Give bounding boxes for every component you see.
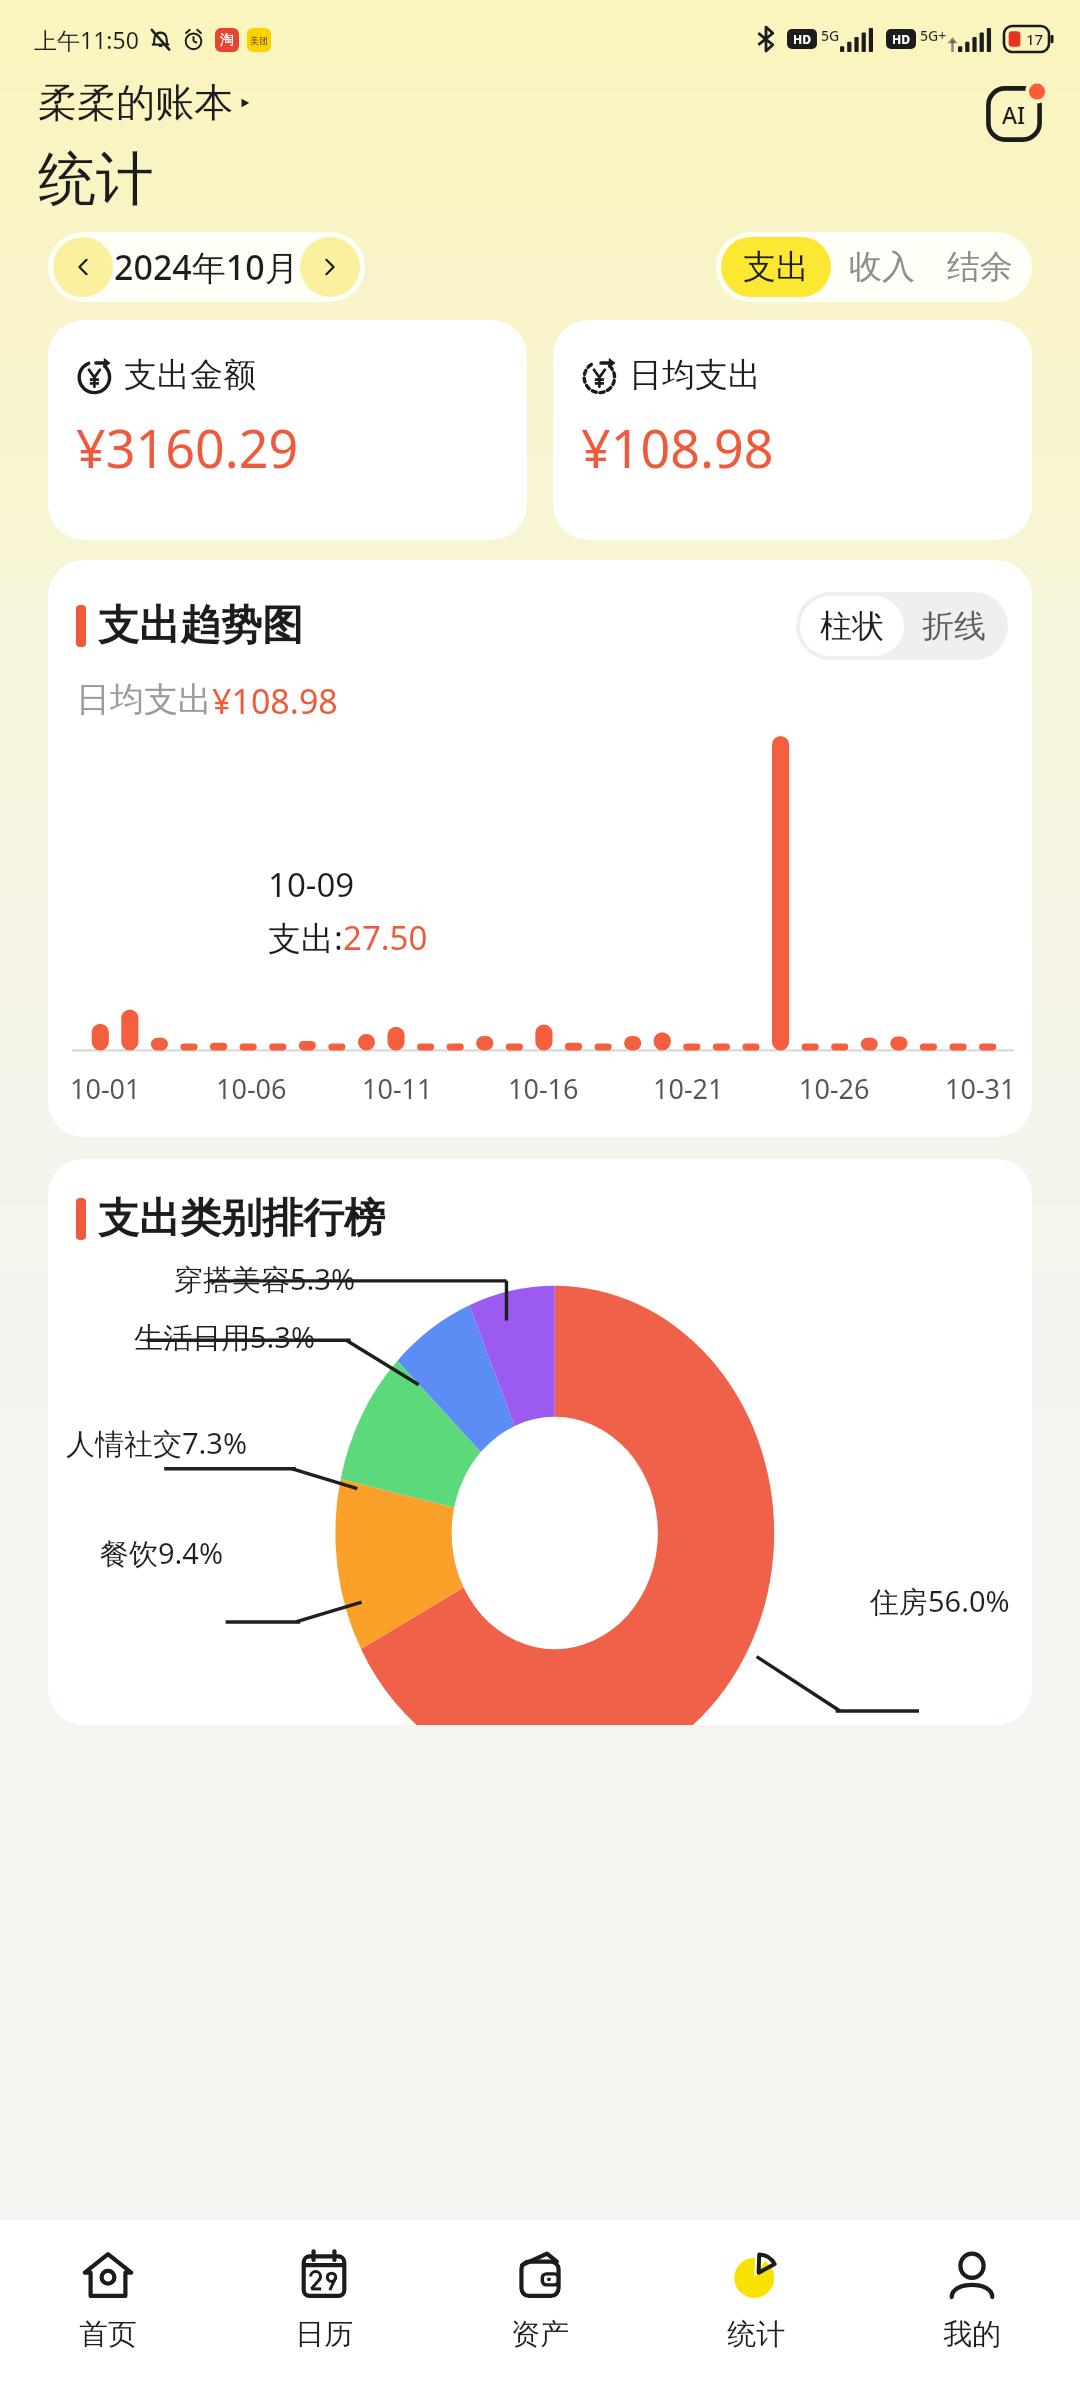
staticText: 收入 [849, 246, 915, 288]
staticText: 27.50 [343, 915, 428, 960]
staticText: 日历 [295, 2316, 353, 2353]
staticText: 资产 [511, 2316, 569, 2353]
staticText: 17 [1026, 29, 1044, 49]
staticText: 10-26 [799, 1070, 870, 1107]
staticText: 我的 [943, 2316, 1001, 2353]
staticText: 10-11 [362, 1070, 433, 1107]
button[interactable]: 收入 [831, 237, 933, 297]
staticText: AI [1002, 99, 1026, 130]
staticText: 穿搭美容5.3% [174, 1259, 356, 1299]
button[interactable]: 统计 [648, 2220, 864, 2400]
staticText: 统计 [727, 2316, 785, 2353]
button[interactable]: 资产 [432, 2220, 648, 2400]
staticText: 10-16 [508, 1070, 579, 1107]
staticText: 折线 [922, 606, 986, 646]
staticText: 首页 [79, 2316, 137, 2353]
button[interactable]: 我的 [864, 2220, 1080, 2400]
button[interactable]: 柱状 [800, 596, 904, 656]
staticText: ¥108.98 [581, 412, 774, 483]
staticText: 2024年10月 [114, 244, 299, 290]
staticText: 支出 [743, 246, 809, 288]
staticText: 5G [821, 26, 840, 45]
staticText: 支出: [268, 915, 343, 960]
staticText: 10-09 [268, 862, 355, 907]
staticText: 支出趋势图 [98, 600, 303, 652]
staticText: 10-06 [216, 1070, 287, 1107]
button[interactable]: 日历 [216, 2220, 432, 2400]
staticText: 柔柔的账本 [38, 78, 233, 127]
staticText: 日均支出 [76, 678, 212, 721]
staticText: 10-21 [653, 1070, 724, 1107]
staticText: ¥3160.29 [76, 412, 299, 483]
staticText: 5G+ [920, 26, 947, 45]
staticText: 人情社交7.3% [66, 1423, 248, 1463]
button[interactable]: 柔柔的账本 [38, 78, 252, 127]
staticText: 结余 [947, 246, 1013, 288]
button[interactable]: 首页 [0, 2220, 216, 2400]
staticText: 统计 [38, 143, 154, 216]
staticText: ¥108.98 [212, 678, 338, 724]
staticText: HD [793, 31, 811, 47]
staticText: 美团 [250, 35, 268, 46]
button[interactable]: 日均支出 [553, 320, 1032, 540]
staticText: 柱状 [820, 606, 884, 646]
staticText: 支出类别排行榜 [98, 1193, 385, 1245]
staticText: 生活日用5.3% [134, 1317, 316, 1357]
staticText: 日均支出 [629, 354, 761, 396]
button[interactable]: AI 助手 [982, 82, 1046, 146]
button[interactable]: 折线 [904, 596, 1004, 656]
staticText: 上午11:50 [34, 24, 139, 55]
button[interactable]: 结余 [933, 237, 1027, 297]
button[interactable]: 支出金额 [48, 320, 527, 540]
staticText: 住房56.0% [870, 1581, 1010, 1621]
staticText: 餐饮9.4% [100, 1533, 224, 1573]
staticText: HD [892, 31, 910, 47]
button[interactable]: 支出 [721, 237, 831, 297]
staticText: 支出金额 [124, 354, 256, 396]
staticText: 淘 [220, 31, 234, 49]
staticText: 10-31 [945, 1070, 1016, 1107]
staticText: 10-01 [70, 1070, 141, 1107]
button[interactable]: 2024年10月 [48, 232, 365, 302]
